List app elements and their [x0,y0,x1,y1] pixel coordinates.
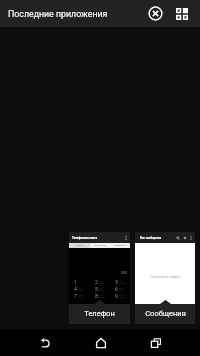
staticText: 2 [95,279,98,285]
staticText: DEF [119,280,123,282]
staticText: Все сообщения [140,236,176,239]
button[interactable]: Телефон [69,304,130,324]
staticText: WXYZ [119,294,125,296]
staticText: Сообщения [145,309,186,318]
staticText: 9 [115,293,118,299]
staticText: 4 [74,286,77,292]
staticText: 7 [74,293,77,299]
staticText: ШЩЪЫ [99,296,107,298]
staticText: Контакты [95,244,106,247]
button[interactable]: Grid view [168,0,196,27]
staticText: ИЙКЛ [78,289,84,291]
staticText: Телефонная книга [72,236,125,239]
button[interactable]: Телефонная книга [69,232,130,304]
staticText: ЬЭЮЯ [119,296,125,298]
staticText: TUV [99,294,103,296]
staticText: ДЕЁЖЗ [119,282,127,284]
staticText: 5 [95,286,98,292]
staticText: Избранное [114,244,127,247]
staticText: 1 [74,279,77,285]
button[interactable]: Back [17,330,72,356]
staticText: 3 [115,279,118,285]
staticText: GHI [78,287,82,289]
staticText: Последние приложения [8,9,108,19]
staticText: РСТУ [119,289,125,291]
button[interactable]: Сообщения [135,304,195,324]
staticText: Телефон [84,309,115,318]
button[interactable]: Все сообщения [135,232,195,304]
staticText: JKL [99,287,103,289]
staticText: МНОП [99,289,106,291]
button[interactable]: Recent apps [128,330,183,356]
button[interactable]: Close all [141,0,169,27]
staticText: ABC [99,280,104,282]
button[interactable]: Home [73,330,128,356]
staticText: Набор [76,244,84,247]
staticText: Сообщений не найдено [150,275,180,278]
staticText: 8 [95,293,98,299]
staticText: PQRS [78,294,84,296]
staticText: ФХЦЧ [78,296,84,298]
staticText: 6 [115,286,118,292]
staticText: MNO [119,287,124,289]
staticText: АБВГ [99,282,105,284]
